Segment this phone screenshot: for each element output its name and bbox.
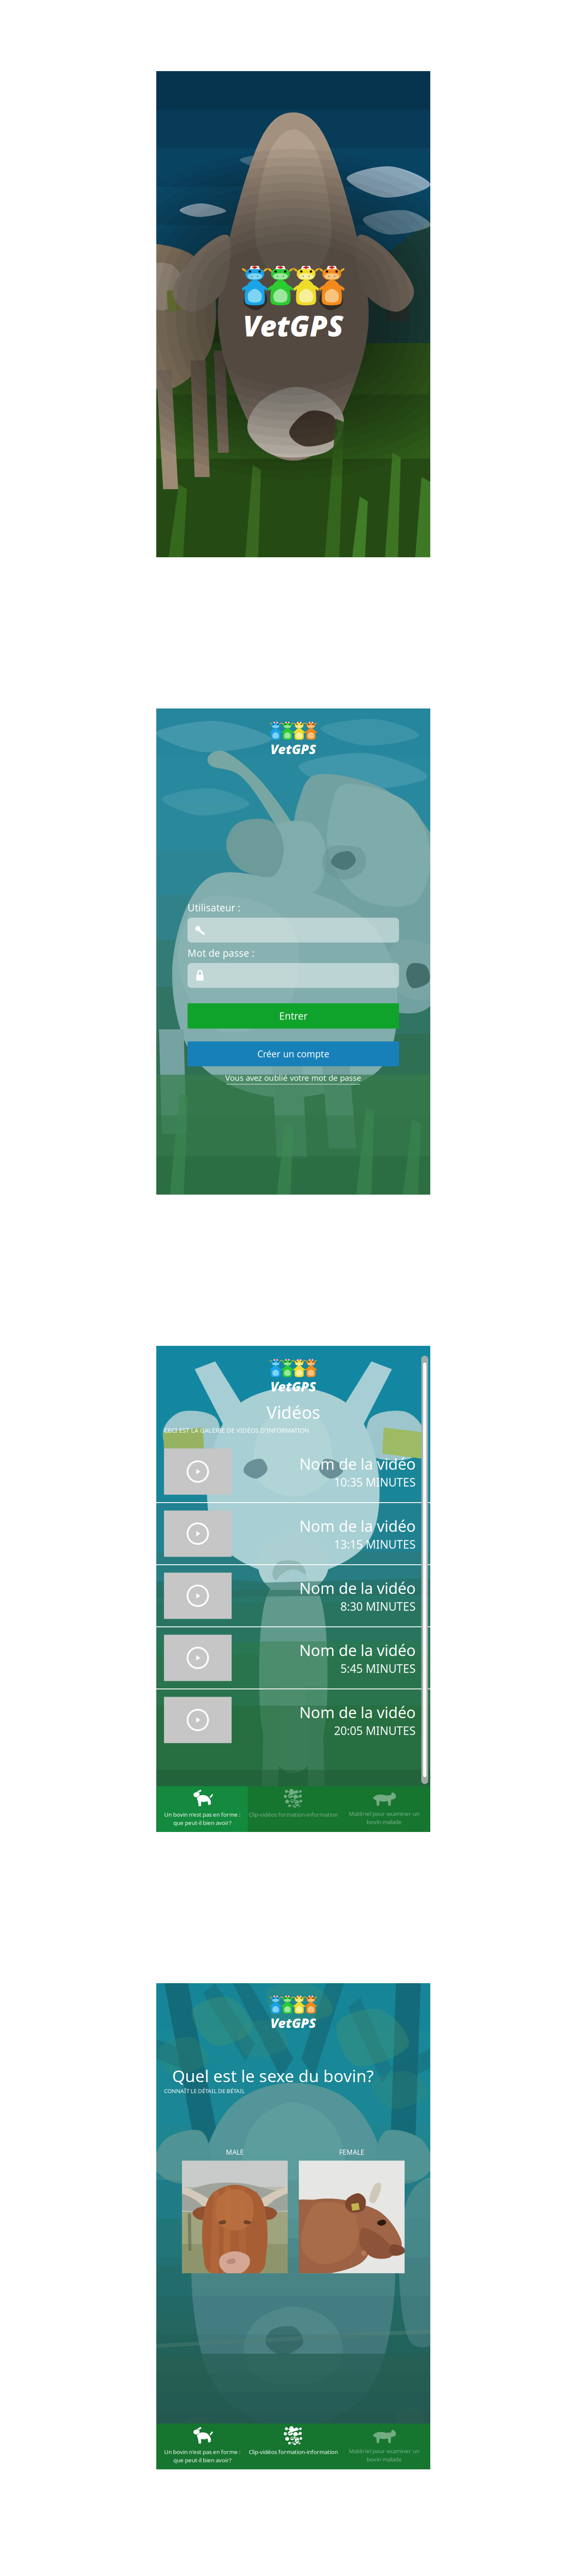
- button[interactable]: Un bovin n'est pas en forme :: [157, 1786, 248, 1832]
- button[interactable]: Entrer: [188, 1003, 399, 1029]
- staticText: VetGPS: [270, 740, 316, 758]
- staticText: Nom de la vidéo: [299, 1702, 416, 1723]
- staticText: bovin malade: [367, 2455, 402, 2463]
- button[interactable]: Nom de la vidéo: [156, 1689, 430, 1751]
- button[interactable]: Créer un compte: [188, 1041, 399, 1066]
- staticText: Nom de la vidéo: [299, 1453, 416, 1474]
- button[interactable]: Vous avez oublié votre mot de passe: [225, 1072, 361, 1084]
- staticText: 13:15 MINUTES: [334, 1536, 416, 1552]
- staticText: Nom de la vidéo: [299, 1515, 416, 1536]
- staticText: que peut-il bien avoir?: [173, 1819, 231, 1827]
- staticText: Créer un compte: [257, 1048, 329, 1060]
- staticText: Utilisateur :: [188, 901, 240, 914]
- button[interactable]: Nom de la vidéo: [156, 1565, 430, 1626]
- staticText: Vous avez oublié votre mot de passe: [225, 1072, 361, 1083]
- staticText: FEMALE: [339, 2147, 364, 2157]
- staticText: Matériel pour examiner un: [349, 1810, 419, 1818]
- staticText: Nom de la vidéo: [299, 1640, 416, 1661]
- staticText: 8:30 MINUTES: [340, 1598, 416, 1614]
- staticText: Un bovin n'est pas en forme :: [164, 1811, 241, 1818]
- staticText: Mot de passe :: [188, 946, 254, 960]
- button[interactable]: Matériel pour examiner un: [339, 1786, 430, 1832]
- staticText: Clip-vidéos formation-information: [249, 1811, 338, 1818]
- staticText: Vidéos: [267, 1400, 320, 1424]
- staticText: Matériel pour examiner un: [349, 2447, 419, 2455]
- staticText: Quel est le sexe du bovin?: [172, 2064, 374, 2087]
- staticText: VetGPS: [270, 2014, 316, 2032]
- staticText: que peut-il bien avoir?: [173, 2456, 231, 2464]
- button[interactable]: Matériel pour examiner un: [339, 2424, 430, 2469]
- staticText: Clip-vidéos formation-information: [249, 2448, 338, 2456]
- staticText: Un bovin n'est pas en forme :: [164, 2448, 241, 2456]
- button[interactable]: Nom de la vidéo: [156, 1627, 430, 1688]
- button[interactable]: MALE: [182, 2147, 288, 2273]
- staticText: Entrer: [279, 1009, 307, 1023]
- staticText: MALE: [226, 2147, 244, 2157]
- button[interactable]: Nom de la vidéo: [156, 1503, 430, 1564]
- staticText: CONNAÎT LE DÉTAIL DE BÉTAIL: [164, 2087, 245, 2095]
- button[interactable]: Clip-vidéos formation-information: [248, 2424, 339, 2469]
- staticText: bovin malade: [367, 1818, 402, 1826]
- button[interactable]: Clip-vidéos formation-information: [248, 1786, 339, 1832]
- staticText: Nom de la vidéo: [299, 1577, 416, 1598]
- staticText: VetGPS: [270, 1377, 316, 1395]
- button[interactable]: FEMALE: [299, 2147, 405, 2273]
- staticText: CECI EST LA GALERIE DE VIDÉOS D'INFORMAT…: [164, 1426, 309, 1434]
- staticText: 5:45 MINUTES: [340, 1661, 416, 1676]
- staticText: VetGPS: [243, 306, 344, 345]
- button[interactable]: Nom de la vidéo: [156, 1441, 430, 1502]
- staticText: 10:35 MINUTES: [334, 1474, 416, 1490]
- staticText: 20:05 MINUTES: [334, 1723, 416, 1738]
- button[interactable]: Un bovin n'est pas en forme :: [157, 2424, 248, 2469]
